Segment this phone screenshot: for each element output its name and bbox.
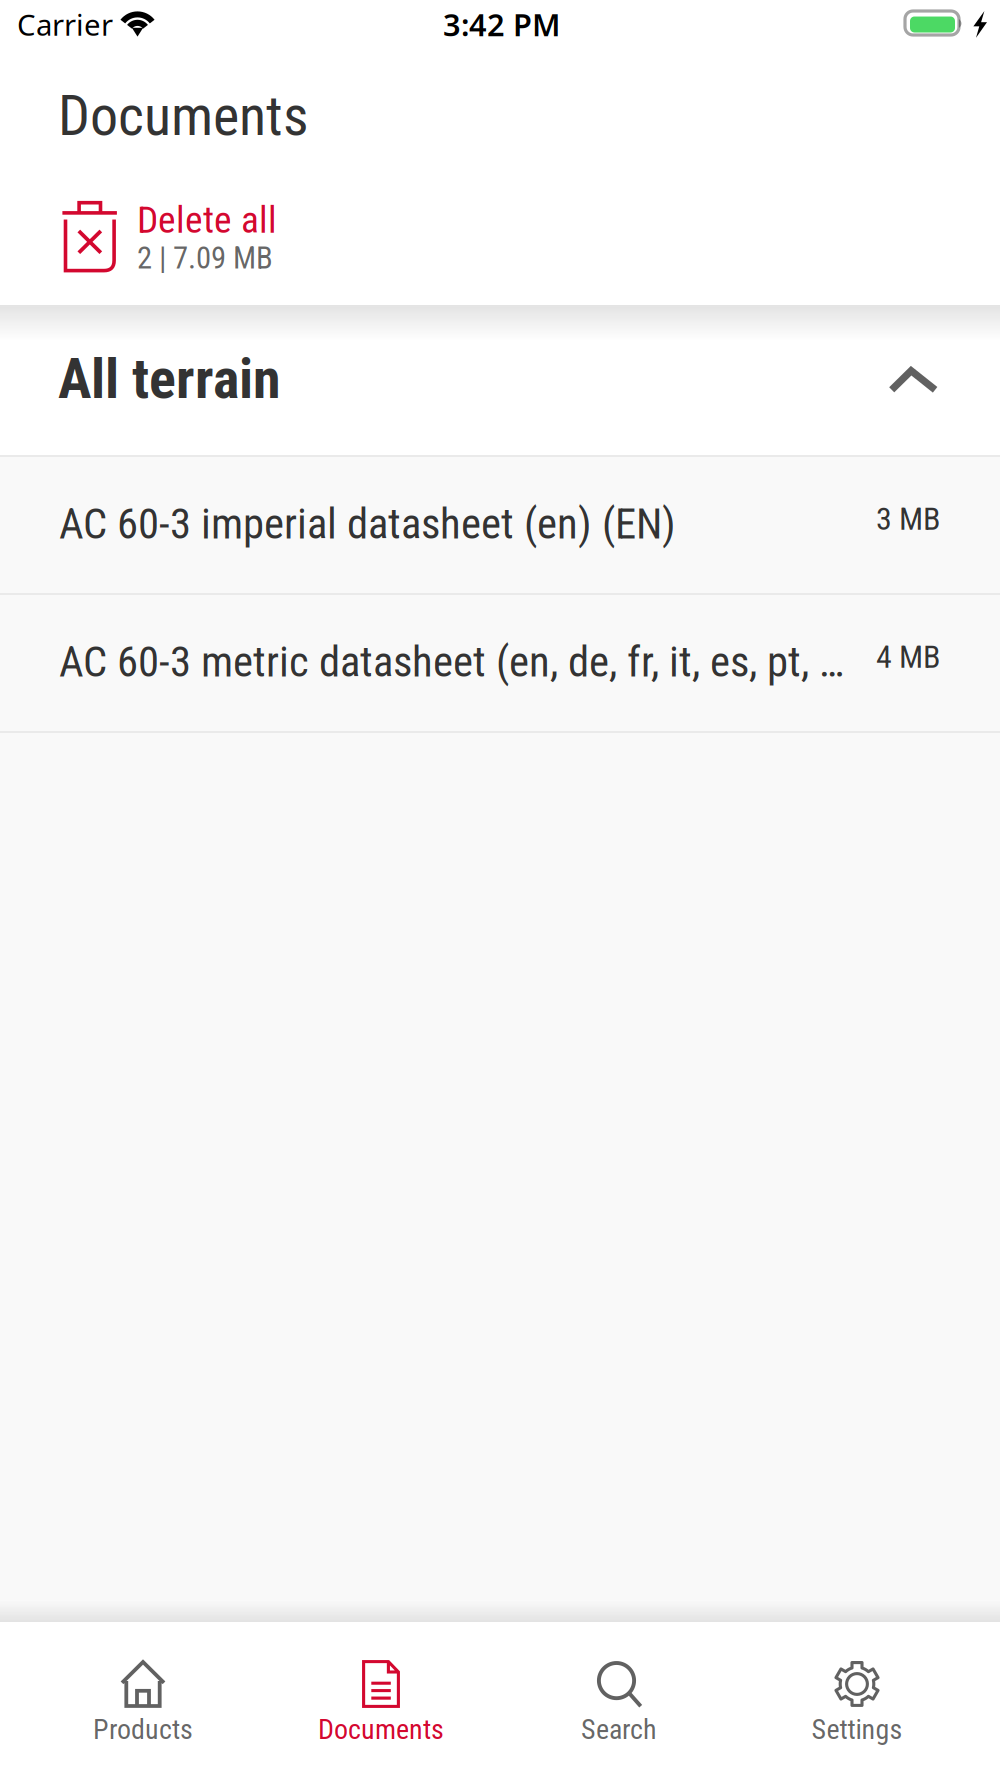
button[interactable]: All terrain [0,305,1000,455]
button[interactable]: Delete all [0,200,340,280]
staticText: 3 MB [876,500,940,537]
button[interactable]: Documents [262,1622,500,1778]
staticText: Products [93,1713,193,1746]
button[interactable]: AC 60-3 metric datasheet (en, de, fr, it… [0,595,1000,731]
staticText: 3:42 PM [443,4,560,45]
button[interactable]: AC 60-3 imperial datasheet (en) (EN) [0,457,1000,593]
staticText: All terrain [58,346,281,412]
staticText: Documents [58,83,309,149]
button[interactable]: Settings [738,1622,976,1778]
button[interactable]: Products [24,1622,262,1778]
staticText: 4 MB [876,638,940,675]
staticText: Carrier [17,5,113,44]
staticText: Search [581,1713,657,1746]
staticText: Settings [811,1713,902,1746]
staticText: AC 60-3 metric datasheet (en, de, fr, it… [59,637,852,687]
staticText: Delete all [137,198,277,242]
staticText: 2 | 7.09 MB [137,240,273,276]
staticText: Documents [318,1713,444,1746]
staticText: AC 60-3 imperial datasheet (en) (EN) [59,499,676,549]
button[interactable]: Search [500,1622,738,1778]
